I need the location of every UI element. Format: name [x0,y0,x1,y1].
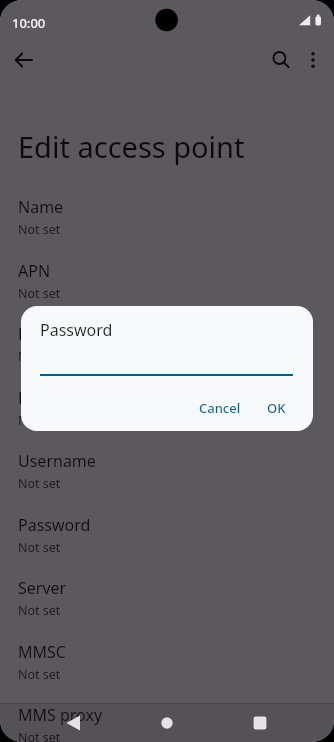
button[interactable]: Username [0,449,334,513]
staticText: MMSC [18,641,66,663]
staticText: Not set [18,285,61,302]
staticText: Server [18,577,67,599]
staticText: Not set [18,221,61,238]
button[interactable]: Password [0,513,334,577]
staticText: Username [18,450,96,472]
button[interactable]: Proxy [0,322,334,386]
staticText: APN [18,260,51,282]
staticText: Port [18,387,50,409]
button[interactable]: Navigate up [4,40,44,80]
button[interactable]: OK [256,392,297,424]
staticText: Cancel [199,399,241,417]
staticText: 10:00 [12,14,46,32]
staticText: OK [267,399,286,417]
staticText: Not set [18,729,61,742]
staticText: Name [18,196,64,218]
button[interactable]: More options [293,40,333,80]
staticText: Not set [18,539,61,556]
staticText: Not set [18,602,61,619]
button[interactable]: Search [261,40,301,80]
staticText: Not set [18,348,61,365]
staticText: Password [18,514,91,536]
button[interactable]: Port [0,386,334,450]
staticText: Proxy [18,323,60,345]
button[interactable]: Server [0,576,334,640]
button[interactable]: MMSC [0,640,334,704]
staticText: Not set [18,666,61,683]
button[interactable]: Name [0,195,334,259]
staticText: MMS proxy [18,704,103,726]
button[interactable]: MMS proxy [0,703,334,742]
staticText: Password [40,319,113,341]
staticText: Not set [18,412,61,429]
staticText: Not set [18,475,61,492]
button[interactable]: APN [0,259,334,323]
button[interactable]: Cancel [188,392,252,424]
staticText: Edit access point [18,127,245,166]
